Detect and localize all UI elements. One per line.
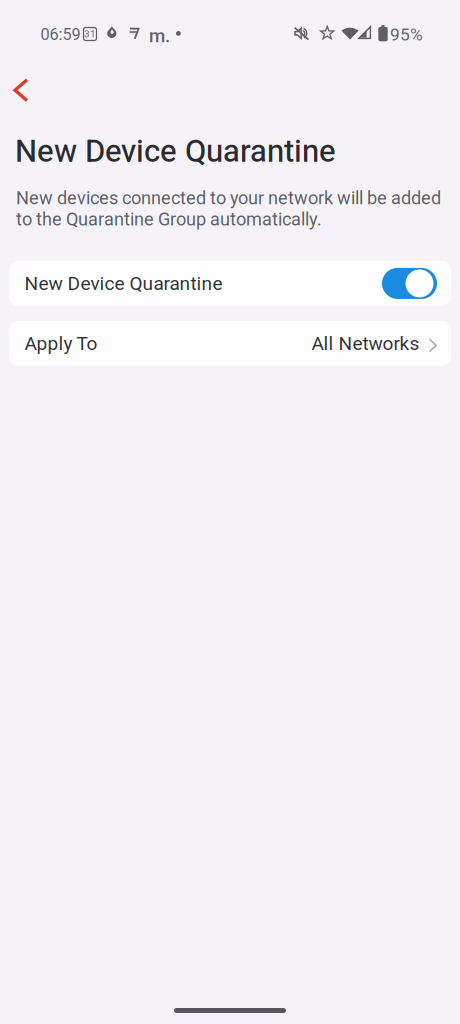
staticText: 95% <box>390 24 423 45</box>
staticText: m. <box>149 25 170 47</box>
button[interactable]: Apply To <box>9 321 451 366</box>
staticText: New Device Quarantine <box>15 133 336 169</box>
staticText: All Networks <box>311 332 419 354</box>
button[interactable]: Back <box>4 56 60 100</box>
staticText: Apply To <box>24 332 97 354</box>
staticText: New Device Quarantine <box>24 272 222 294</box>
staticText: New devices connected to your network wi… <box>16 187 441 230</box>
button[interactable]: New Device Quarantine <box>9 261 451 306</box>
staticText: 31 <box>84 28 96 40</box>
staticText: 06:59 <box>40 25 80 44</box>
